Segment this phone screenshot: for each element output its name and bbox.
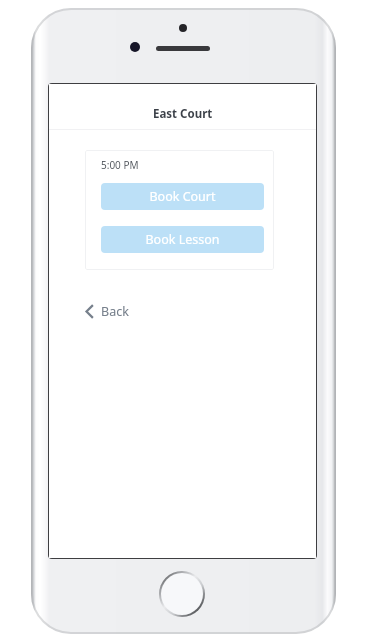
button[interactable]: Book Court	[101, 183, 264, 210]
staticText: Book Lesson	[145, 231, 220, 248]
staticText: East Court	[153, 106, 213, 122]
staticText: Book Court	[149, 188, 216, 205]
staticText: Back	[101, 303, 129, 320]
staticText: 5:00 PM	[101, 158, 139, 172]
button[interactable]: Back	[85, 303, 129, 320]
button[interactable]: Home	[161, 573, 203, 615]
other: Back	[85, 304, 94, 319]
button[interactable]: Book Lesson	[101, 226, 264, 253]
